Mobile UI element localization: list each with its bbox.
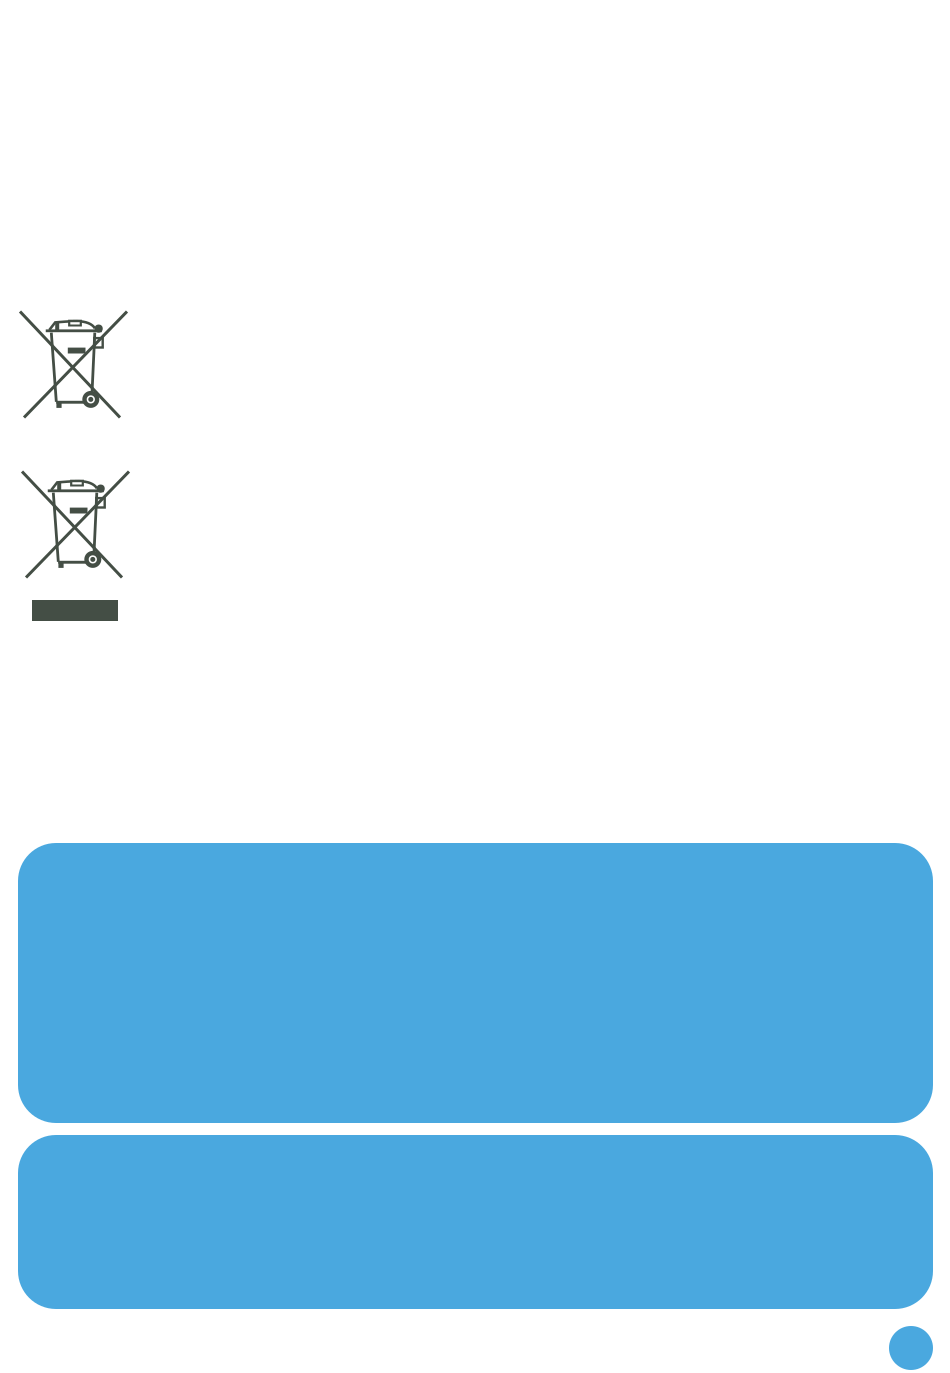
button[interactable]: More — [889, 1326, 933, 1370]
button[interactable] — [18, 843, 933, 1123]
button[interactable] — [18, 1135, 933, 1309]
